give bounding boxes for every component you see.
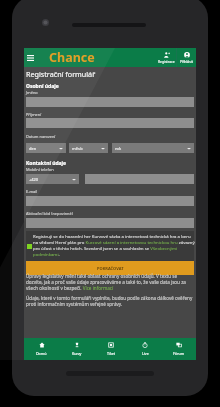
staticText: Příjmení	[26, 112, 42, 117]
staticText: Jméno	[26, 90, 38, 95]
staticText: Osobní údaje	[26, 83, 59, 90]
staticText: Tiket	[107, 351, 116, 356]
staticText: Chance	[49, 49, 95, 66]
button[interactable]: Live	[128, 338, 162, 360]
button[interactable]: Registrace	[157, 48, 176, 67]
staticText: Fórum	[173, 351, 185, 356]
staticText: Domů	[36, 351, 47, 356]
staticText: rok	[115, 146, 122, 151]
staticText: Datum narození	[26, 134, 56, 139]
button[interactable]: Souhlas	[26, 231, 194, 261]
staticText: +420	[29, 177, 39, 182]
staticText: Kontaktní údaje	[26, 160, 67, 167]
staticText: den	[29, 146, 37, 151]
staticText: E-mail	[26, 189, 38, 194]
staticText: Přihlásit	[180, 59, 193, 64]
button[interactable]: rok	[112, 143, 194, 153]
button[interactable]: Menu	[24, 48, 37, 67]
staticText: Registruji se do hazardní her Kurzové sá…	[33, 233, 195, 257]
staticText: Údaje, které v tomto formuláři vyplníte,…	[26, 295, 193, 307]
button[interactable]: Přihlásit	[177, 48, 196, 67]
button[interactable]: +420	[26, 174, 79, 184]
button[interactable]: měsíc	[69, 143, 108, 153]
staticText: Registrace	[158, 59, 175, 64]
button[interactable]: Domů	[24, 338, 59, 360]
button[interactable]: den	[26, 143, 66, 153]
staticText: Mobilní telefon	[26, 167, 54, 172]
staticText: POKRAČOVAT	[97, 266, 124, 271]
staticText: Aktivační kód (nepovinné)	[26, 211, 73, 216]
button[interactable]: Fórum	[162, 338, 196, 360]
staticText: Registrační formulář	[26, 69, 96, 79]
staticText: Live	[142, 351, 149, 356]
staticText: Kurzy	[72, 351, 82, 356]
staticText: Úpravy legislativy mění také oblast ochr…	[26, 273, 186, 291]
button[interactable]: Tiket	[94, 338, 128, 360]
button[interactable]: POKRAČOVAT	[26, 261, 194, 275]
button[interactable]: Kurzy	[59, 338, 94, 360]
staticText: měsíc	[72, 146, 83, 151]
